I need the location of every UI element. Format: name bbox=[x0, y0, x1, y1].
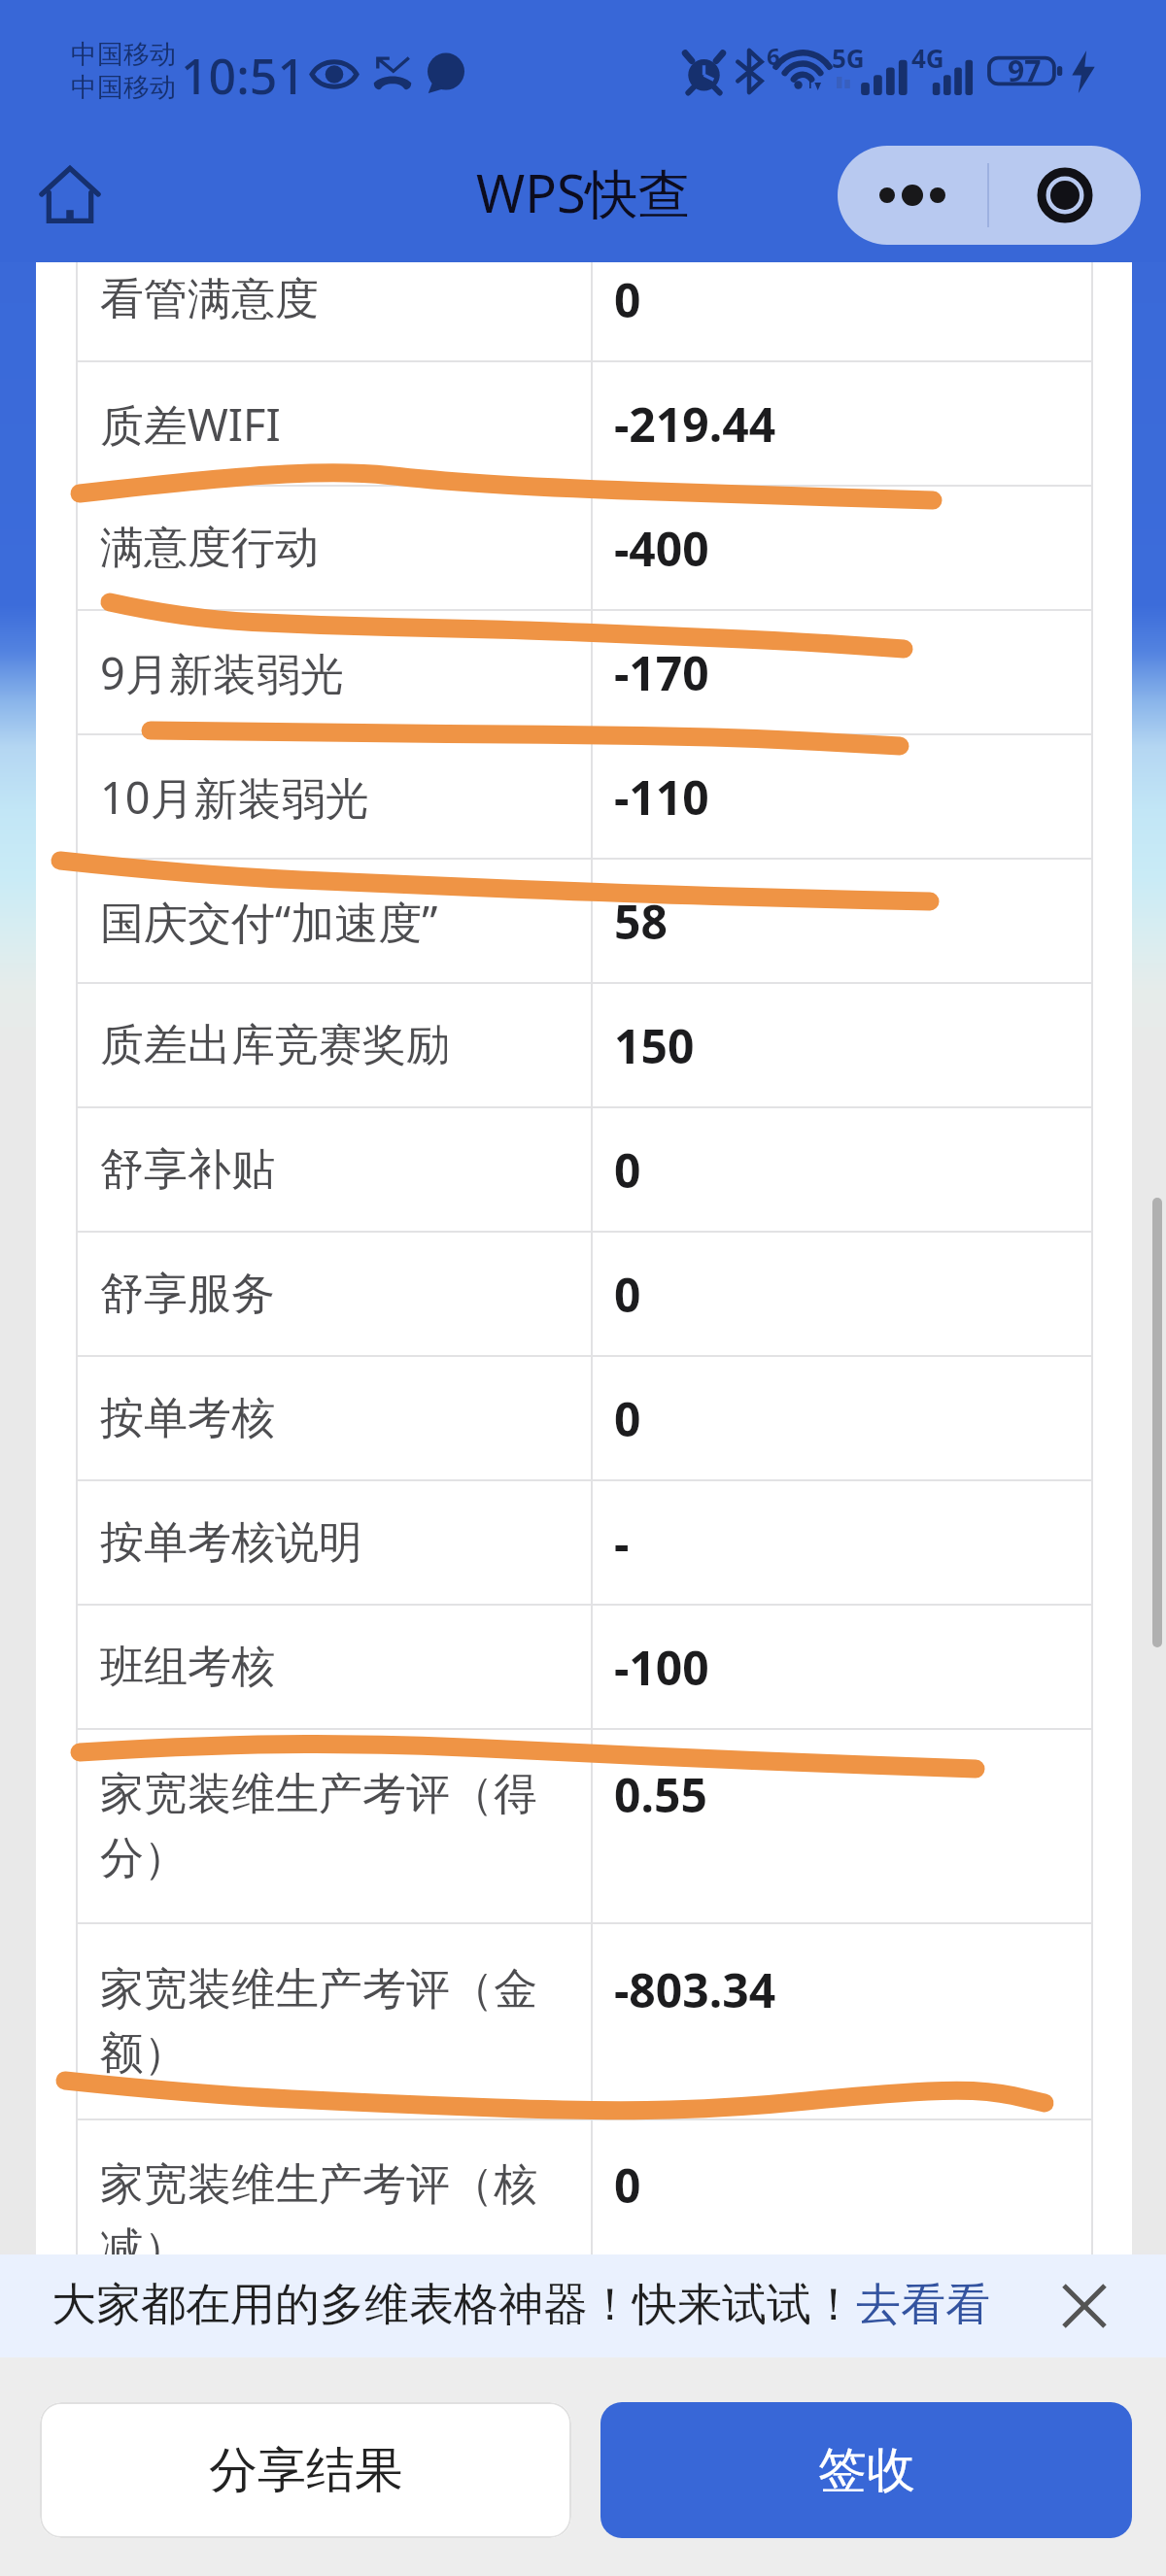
button[interactable]: 家宽装维生产考评（得分） bbox=[76, 1730, 1092, 1924]
button[interactable]: Home bbox=[21, 146, 119, 243]
button[interactable]: 满意度行动 bbox=[76, 487, 1092, 611]
button[interactable]: 10月新装弱光 bbox=[76, 735, 1092, 860]
staticText: 舒享服务 bbox=[100, 1267, 559, 1322]
button[interactable]: 按单考核 bbox=[76, 1357, 1092, 1481]
staticText: 0 bbox=[614, 2153, 641, 2217]
button[interactable]: 签收 bbox=[600, 2402, 1132, 2538]
button[interactable]: 看管满意度 bbox=[76, 262, 1092, 362]
staticText: 0.55 bbox=[614, 1763, 707, 1826]
staticText: 家宽装维生产考评（得分） bbox=[100, 1767, 559, 1886]
staticText: 满意度行动 bbox=[100, 521, 559, 576]
staticText: 6 bbox=[767, 40, 780, 72]
staticText: 质差WIFI bbox=[100, 394, 559, 454]
staticText: -803.34 bbox=[614, 1958, 776, 2021]
staticText: 150 bbox=[614, 1014, 695, 1077]
staticText: WPS快查 bbox=[476, 156, 691, 228]
staticText: -100 bbox=[614, 1636, 709, 1699]
staticText: 看管满意度 bbox=[100, 272, 559, 327]
staticText: 4G bbox=[911, 41, 944, 75]
staticText: 舒享补贴 bbox=[100, 1142, 559, 1198]
staticText: 大家都在用的多维表格神器！快来试试！ bbox=[51, 2277, 856, 2333]
staticText: 10月新装弱光 bbox=[100, 767, 559, 827]
staticText: 分享结果 bbox=[209, 2440, 403, 2501]
staticText: -219.44 bbox=[614, 392, 776, 456]
button[interactable]: 按单考核说明 bbox=[76, 1481, 1092, 1606]
staticText: - bbox=[614, 1511, 630, 1575]
button[interactable]: 家宽装维生产考评（金额） bbox=[76, 1924, 1092, 2120]
staticText: 0 bbox=[614, 1263, 641, 1326]
button[interactable]: 舒享服务 bbox=[76, 1233, 1092, 1357]
button[interactable]: 国庆交付“加速度” bbox=[76, 860, 1092, 984]
staticText: 9月新装弱光 bbox=[100, 643, 559, 702]
staticText: 按单考核说明 bbox=[100, 1515, 559, 1571]
button[interactable]: 质差出库竞赛奖励 bbox=[76, 984, 1092, 1108]
button[interactable]: 9月新装弱光 bbox=[76, 611, 1092, 735]
staticText: 0 bbox=[614, 268, 641, 331]
button[interactable]: 分享结果 bbox=[40, 2402, 571, 2538]
button[interactable]: 质差WIFI bbox=[76, 362, 1092, 487]
staticText: -110 bbox=[614, 765, 709, 829]
staticText: 班组考核 bbox=[100, 1640, 559, 1695]
staticText: 国庆交付“加速度” bbox=[100, 892, 559, 951]
staticText: 签收 bbox=[818, 2440, 915, 2501]
staticText: 家宽装维生产考评（金额） bbox=[100, 1962, 559, 2082]
staticText: 去看看 bbox=[856, 2277, 990, 2333]
staticText: 质差出库竞赛奖励 bbox=[100, 1018, 559, 1073]
button[interactable]: 舒享补贴 bbox=[76, 1108, 1092, 1233]
staticText: 5G bbox=[832, 41, 865, 75]
button[interactable]: 班组考核 bbox=[76, 1606, 1092, 1730]
staticText: 97 bbox=[1008, 51, 1042, 90]
staticText: -400 bbox=[614, 517, 709, 580]
staticText: 家宽装维生产考评（核减） bbox=[100, 2157, 559, 2254]
staticText: 10:51 bbox=[181, 43, 305, 109]
staticText: 0 bbox=[614, 1387, 641, 1450]
button[interactable]: Close banner bbox=[1047, 2269, 1121, 2343]
staticText: 58 bbox=[614, 890, 668, 953]
staticText: 按单考核 bbox=[100, 1391, 559, 1446]
staticText: 中国移动 bbox=[71, 71, 176, 104]
button[interactable]: More bbox=[838, 146, 987, 245]
button[interactable]: 去看看 bbox=[856, 2277, 990, 2333]
staticText: 0 bbox=[614, 1138, 641, 1202]
button[interactable]: Close bbox=[989, 146, 1141, 245]
staticText: -170 bbox=[614, 641, 709, 704]
button[interactable]: 家宽装维生产考评（核减） bbox=[76, 2120, 1092, 2254]
staticText: 中国移动 bbox=[71, 38, 176, 71]
